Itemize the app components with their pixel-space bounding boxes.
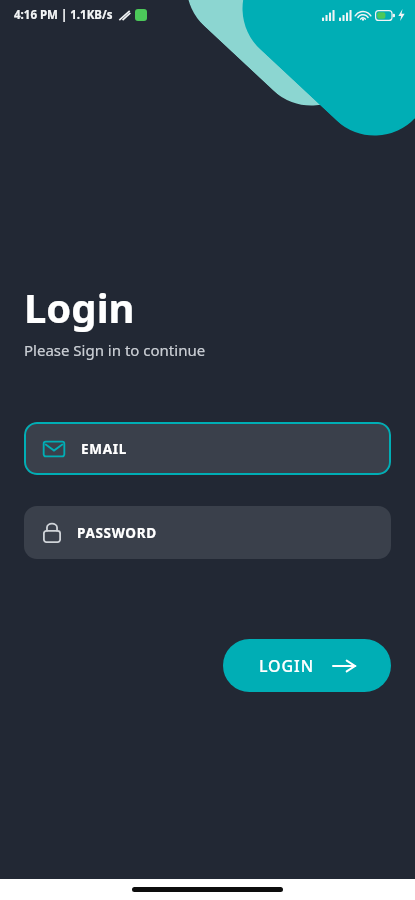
other: Login (333, 658, 355, 674)
button[interactable]: LOGIN (223, 639, 391, 692)
staticText: PASSWORD (77, 524, 157, 542)
staticText: EMAIL (81, 440, 127, 458)
staticText: LOGIN (259, 655, 314, 677)
staticText: Please Sign in to continue (24, 340, 206, 360)
button[interactable]: PASSWORD (24, 506, 391, 559)
button[interactable]: EMAIL (24, 422, 391, 475)
staticText: 4:16 PM | 1.1KB/s (14, 7, 113, 23)
staticText: Login (24, 280, 135, 334)
